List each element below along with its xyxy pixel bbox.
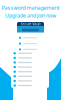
staticText: Password management bbox=[1, 4, 59, 11]
staticText: Upgrade and join now bbox=[5, 12, 56, 19]
staticText: Secure Vault bbox=[20, 22, 40, 26]
